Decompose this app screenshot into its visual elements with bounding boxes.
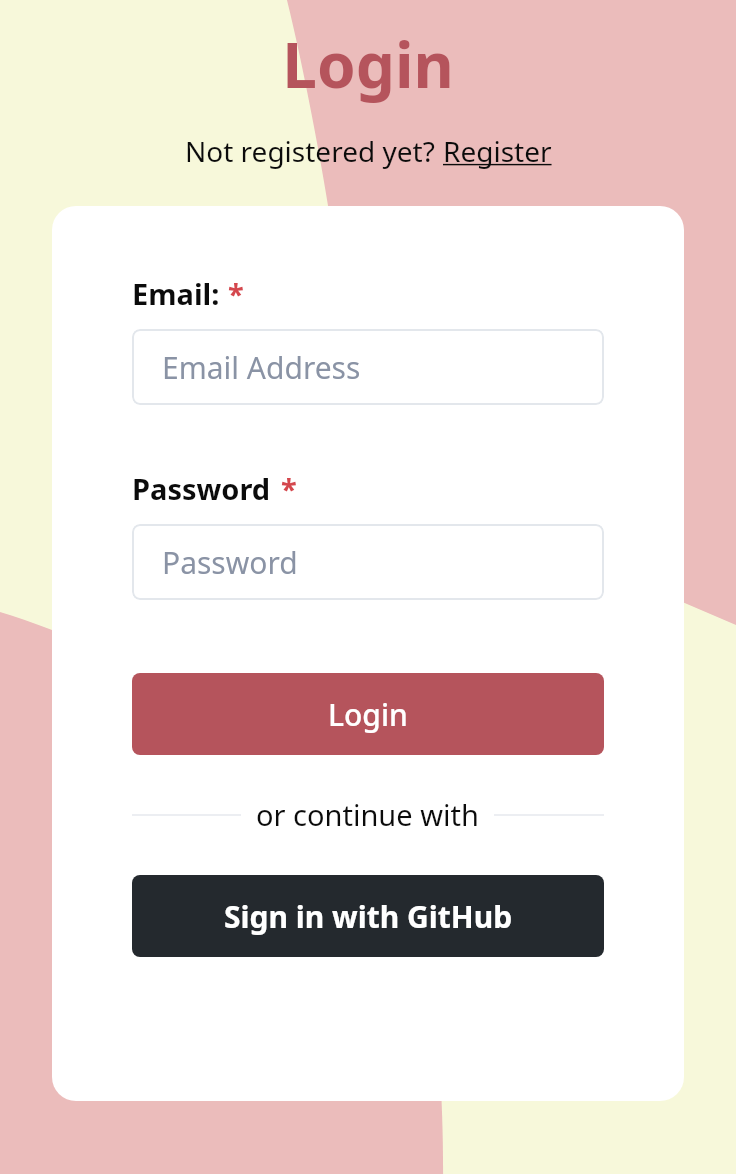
staticText: Login [328,694,408,735]
staticText: Email: [132,274,220,313]
button[interactable]: Password [132,524,604,600]
staticText: Sign in with GitHub [224,896,513,937]
staticText: Login [282,22,454,106]
staticText: Password [132,469,271,508]
button[interactable]: Register [443,132,552,170]
button[interactable]: Login [132,673,604,755]
staticText: Email Address [162,347,361,388]
staticText: Register [443,132,552,170]
button[interactable]: Sign in with GitHub [132,875,604,957]
button[interactable]: Email Address [132,329,604,405]
staticText: * [228,274,244,313]
staticText: * [281,469,297,508]
staticText: Not registered yet? [185,132,443,170]
staticText: Password [162,542,298,583]
staticText: or continue with [256,795,479,834]
